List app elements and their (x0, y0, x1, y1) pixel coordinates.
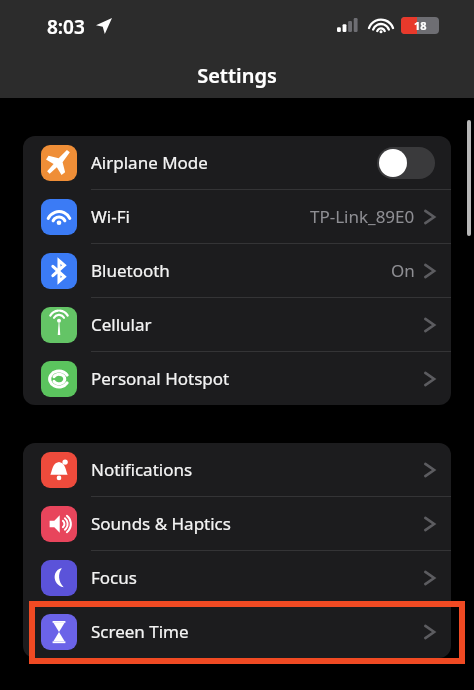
button[interactable]: Sounds & Haptics (23, 497, 451, 551)
staticText: Personal Hotspot (91, 367, 230, 390)
staticText: Cellular (91, 313, 152, 336)
button[interactable]: Screen Time (23, 605, 451, 658)
staticText: Sounds & Haptics (91, 512, 231, 535)
button[interactable]: Personal Hotspot (23, 352, 451, 405)
staticText: Settings (0, 62, 474, 89)
button[interactable]: Cellular (23, 298, 451, 352)
button[interactable]: Bluetooth (23, 244, 451, 298)
staticText: Screen Time (91, 620, 189, 643)
button[interactable]: Airplane Mode (23, 136, 451, 190)
staticText: Wi-Fi (91, 205, 130, 228)
button[interactable]: Airplane Mode toggle, off (377, 147, 435, 179)
staticText: TP-Link_89E0 (310, 205, 415, 228)
staticText: 18 (414, 18, 427, 33)
staticText: On (391, 259, 415, 282)
button[interactable]: Wi-Fi (23, 190, 451, 244)
button[interactable]: Notifications (23, 443, 451, 497)
button[interactable]: Focus (23, 551, 451, 605)
staticText: Bluetooth (91, 259, 170, 282)
staticText: Airplane Mode (91, 151, 208, 174)
staticText: Notifications (91, 458, 193, 481)
staticText: Focus (91, 566, 137, 589)
staticText: 8:03 (47, 14, 85, 40)
